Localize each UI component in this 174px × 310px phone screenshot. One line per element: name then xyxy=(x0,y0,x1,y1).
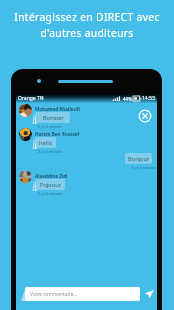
staticText: 14:53 xyxy=(142,95,155,102)
staticText: 44% xyxy=(123,96,132,102)
button[interactable]: Close xyxy=(138,109,152,123)
staticText: Hatem Ben Youssef xyxy=(35,131,80,137)
button[interactable]: Votre commentaire... xyxy=(25,287,140,301)
staticText: Intéragissez en DIRECT avec xyxy=(14,10,160,24)
staticText: Votre commentaire... xyxy=(30,291,78,298)
staticText: d'autres auditeurs xyxy=(40,26,134,40)
staticText: Bonjour xyxy=(128,155,150,163)
staticText: Pojouur xyxy=(40,181,62,189)
staticText: Mohamed Khalloufi xyxy=(35,106,80,112)
staticText: Il y a 5 minutes xyxy=(132,165,157,170)
staticText: Il y a 5 minutes xyxy=(38,124,63,129)
staticText: Bonsoir xyxy=(43,114,64,122)
button[interactable]: Send xyxy=(142,287,156,301)
staticText: hello xyxy=(39,139,53,147)
staticText: Il y a 5 minutes xyxy=(38,149,63,154)
staticText: Alaeddine Zidi xyxy=(35,173,68,179)
staticText: Orange TN xyxy=(18,95,44,102)
staticText: Il y a 5 minutes xyxy=(38,191,63,196)
